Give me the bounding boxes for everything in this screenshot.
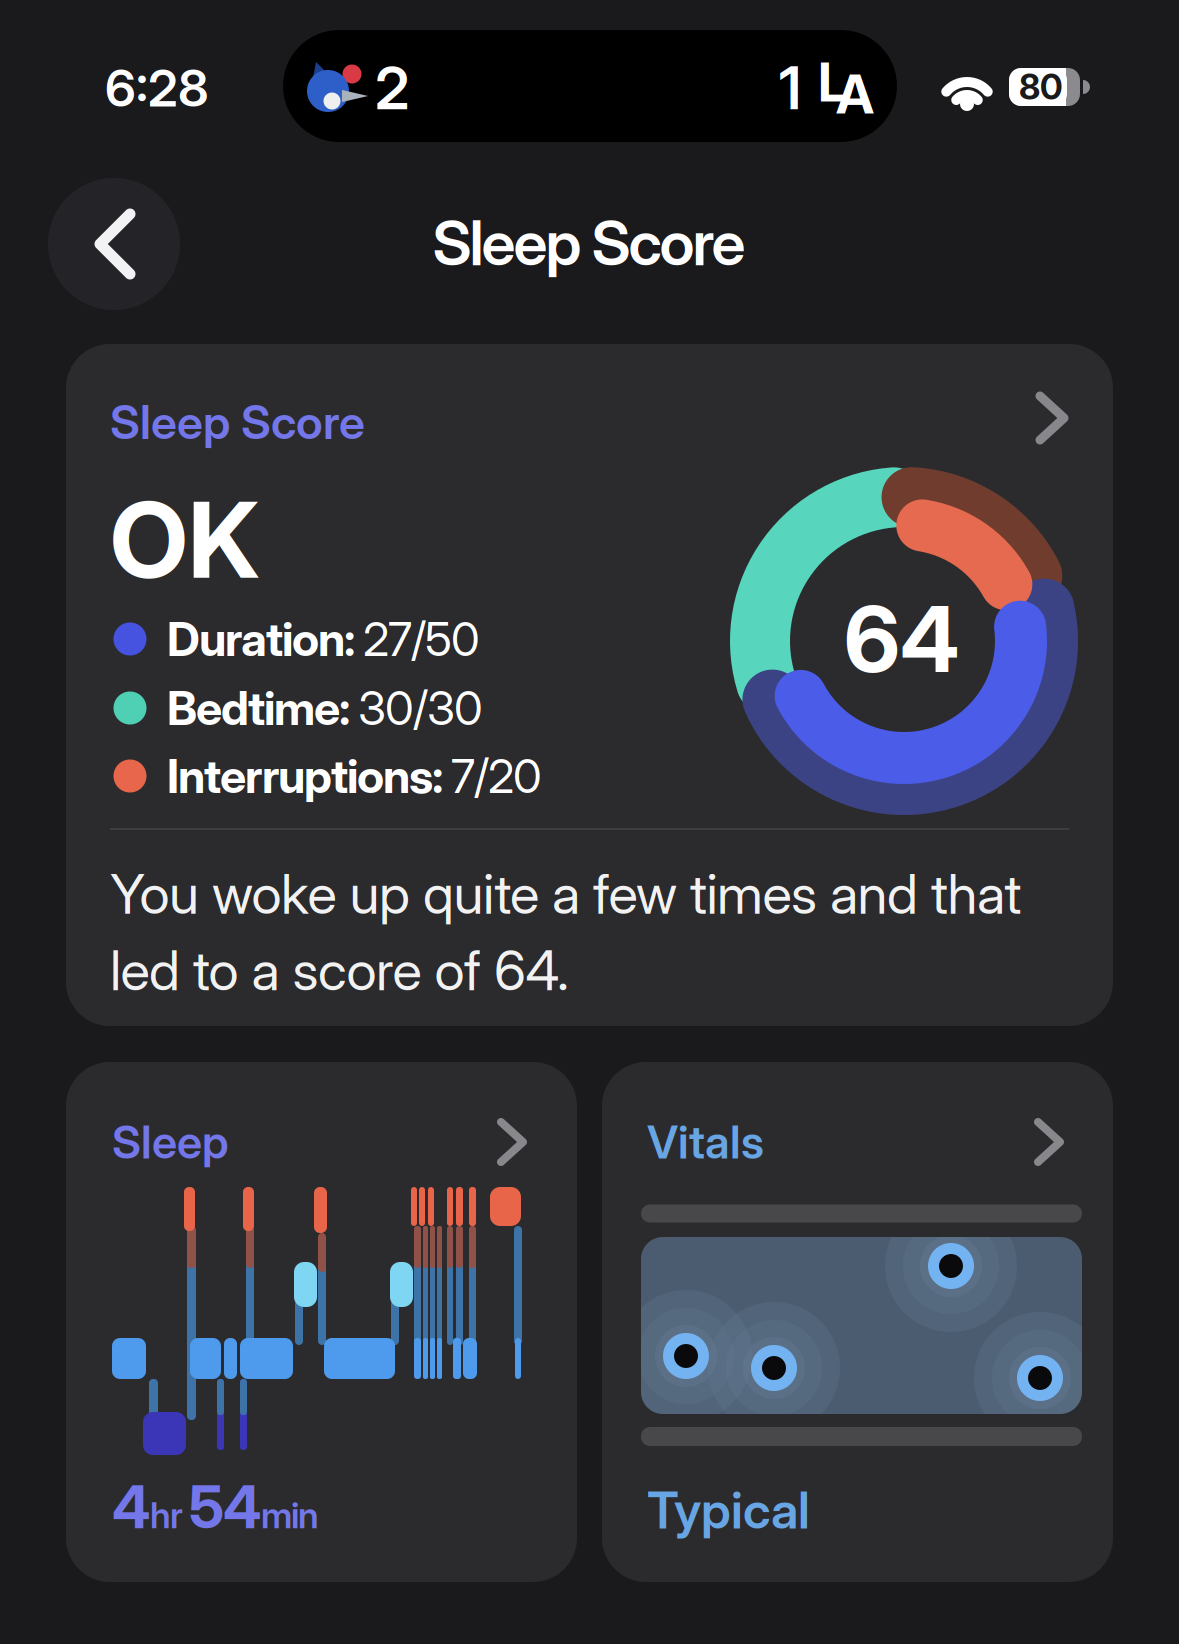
staticText: Sleep xyxy=(112,1115,229,1169)
button[interactable]: Sleep Score xyxy=(66,344,1113,1026)
staticText: Typical xyxy=(647,1480,810,1540)
staticText: You woke up quite a few times and that l… xyxy=(110,861,1021,1002)
staticText: Sleep Score xyxy=(432,207,745,279)
button[interactable]: Sleep xyxy=(66,1062,577,1582)
staticText: 4hr 54min xyxy=(112,1472,319,1542)
staticText: Interruptions: 7/20 xyxy=(167,748,542,804)
staticText: Vitals xyxy=(647,1115,764,1169)
staticText: Duration: 27/50 xyxy=(167,611,480,667)
staticText: Sleep Score xyxy=(110,394,365,450)
staticText: OK xyxy=(110,479,259,601)
staticText: 6:28 xyxy=(105,58,209,118)
staticText: L xyxy=(818,50,848,113)
staticText: 64 xyxy=(844,585,960,692)
staticText: 2 xyxy=(375,53,409,123)
staticText: Bedtime: 30/30 xyxy=(167,680,483,736)
staticText: A xyxy=(836,62,874,125)
staticText: 80 xyxy=(1019,67,1063,107)
button[interactable] xyxy=(48,178,180,310)
staticText: 1 xyxy=(779,53,801,123)
button[interactable]: Vitals xyxy=(602,1062,1113,1582)
